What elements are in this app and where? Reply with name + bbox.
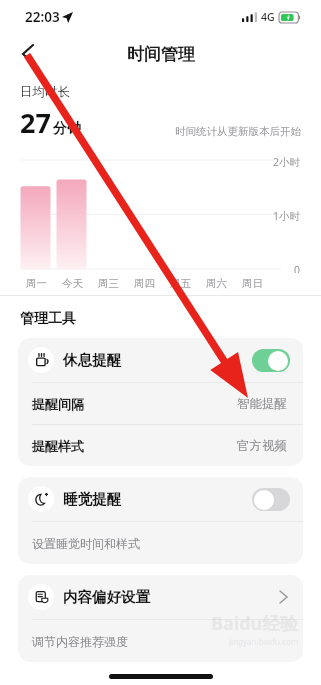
staticText: 1小时 (273, 209, 301, 223)
button[interactable]: 提醒样式 (18, 425, 303, 466)
staticText: 周三 (98, 277, 119, 290)
staticText: 管理工具 (20, 310, 76, 328)
button[interactable]: 调节内容推荐强度 (18, 620, 303, 662)
staticText: 设置睡觉时间和样式 (32, 536, 140, 551)
staticText: 周一 (26, 277, 47, 290)
staticText: 0 (294, 263, 301, 273)
button[interactable]: 设置睡觉时间和样式 (18, 522, 303, 564)
staticText: 4G (261, 10, 275, 24)
staticText: 休息提醒 (63, 351, 121, 369)
button[interactable]: Toggle on (252, 349, 290, 372)
staticText: 官方视频 (237, 438, 287, 454)
staticText: 时间管理 (127, 44, 195, 65)
button[interactable]: Back (10, 36, 46, 72)
staticText: 周六 (206, 277, 227, 290)
staticText: 22:03 (25, 8, 60, 26)
button[interactable]: 提醒间隔 (18, 383, 303, 424)
staticText: 内容偏好设置 (63, 588, 150, 606)
staticText: 时间统计从更新版本后开始 (175, 125, 301, 138)
staticText: jingyan.baidu.com (229, 636, 299, 647)
button[interactable]: 睡觉提醒 (18, 477, 303, 521)
staticText: 2小时 (273, 155, 301, 169)
staticText: 今天 (62, 277, 83, 290)
button[interactable]: 内容偏好设置 (18, 575, 303, 619)
staticText: Baidu经验 (211, 611, 299, 636)
staticText: 27 (20, 104, 51, 141)
staticText: 周日 (242, 277, 263, 290)
staticText: 分钟 (53, 120, 81, 138)
button[interactable]: Toggle off (252, 488, 290, 511)
staticText: 调节内容推荐强度 (32, 634, 128, 649)
staticText: 提醒样式 (32, 438, 84, 454)
staticText: 提醒间隔 (32, 396, 84, 412)
staticText: 智能提醒 (237, 396, 287, 412)
staticText: 周五 (170, 277, 191, 290)
staticText: 日均时长 (20, 84, 70, 100)
staticText: 睡觉提醒 (63, 490, 121, 508)
button[interactable]: 休息提醒 (18, 338, 303, 382)
staticText: 周四 (134, 277, 155, 290)
